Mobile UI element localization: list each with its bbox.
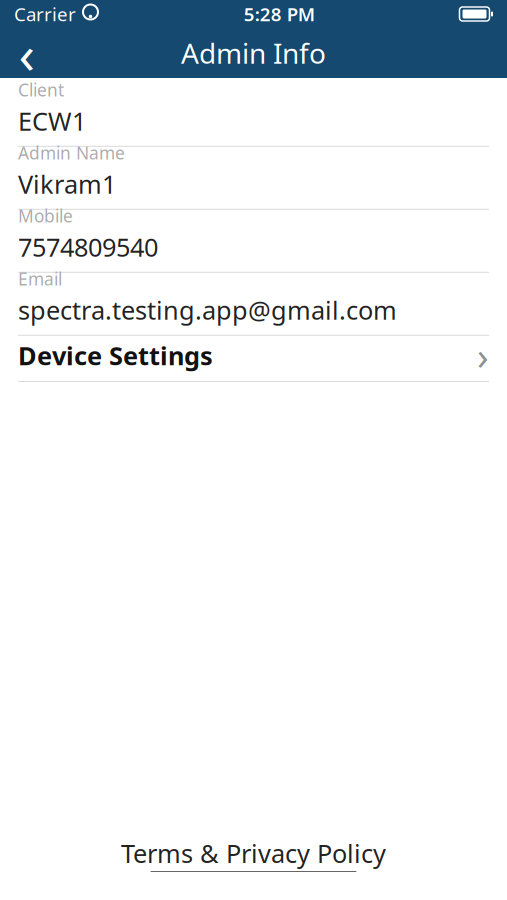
staticText: 5:28 PM xyxy=(244,2,315,26)
staticText: Client xyxy=(18,78,64,101)
staticText: Mobile xyxy=(18,204,73,227)
staticText: Email xyxy=(18,267,62,290)
staticText: Admin Name xyxy=(18,141,125,164)
staticText: Carrier xyxy=(14,2,76,26)
staticText: Terms & Privacy Policy xyxy=(121,836,386,870)
staticText: ‹ xyxy=(18,18,35,88)
staticText: Vikram1 xyxy=(18,167,116,201)
button[interactable]: Device Settings xyxy=(18,330,489,381)
staticText: Admin Info xyxy=(181,34,326,72)
staticText: Device Settings xyxy=(18,339,213,372)
button[interactable]: Terms & Privacy Policy xyxy=(101,830,406,878)
staticText: ECW1 xyxy=(18,104,86,138)
staticText: 7574809540 xyxy=(18,230,158,264)
button[interactable]: Back xyxy=(0,28,54,78)
staticText: › xyxy=(477,331,489,380)
staticText: spectra.testing.app@gmail.com xyxy=(18,293,397,327)
